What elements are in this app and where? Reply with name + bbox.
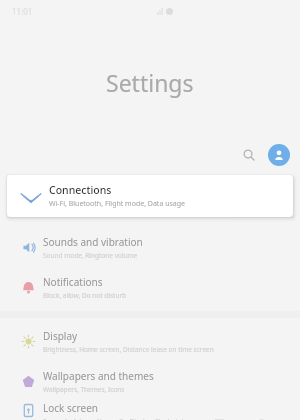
button[interactable]: Notifications (0, 267, 300, 307)
staticText: Wallpapers and themes (43, 369, 154, 383)
staticText: Notifications (43, 275, 103, 289)
staticText: Sounds and vibration (43, 235, 143, 249)
button[interactable]: Wallpapers and themes (0, 361, 300, 401)
button[interactable]: Sounds and vibration (0, 227, 300, 267)
staticText: Brightness, Home screen, Distance lease … (43, 345, 214, 354)
button[interactable]: Account (268, 144, 290, 166)
staticText: Block, allow, Do not disturb (43, 291, 127, 300)
staticText: Display (43, 329, 78, 343)
staticText: Screen lock type, Always On Display, Clo… (43, 417, 187, 420)
staticText: Wi-Fi, Bluetooth, Flight mode, Data usag… (49, 199, 186, 209)
button[interactable]: Display (0, 321, 300, 361)
staticText: Lock screen (43, 401, 99, 415)
staticText: Sound mode, Ringtone volume (43, 251, 138, 260)
staticText: Wallpapers, Themes, Icons (43, 385, 125, 394)
button[interactable]: Search (236, 142, 262, 168)
staticText: 11:01 (12, 6, 33, 17)
staticText: Settings (106, 67, 194, 98)
button[interactable]: Lock screen (0, 401, 300, 420)
button[interactable]: Connections (7, 175, 293, 217)
staticText: Connections (49, 183, 112, 197)
